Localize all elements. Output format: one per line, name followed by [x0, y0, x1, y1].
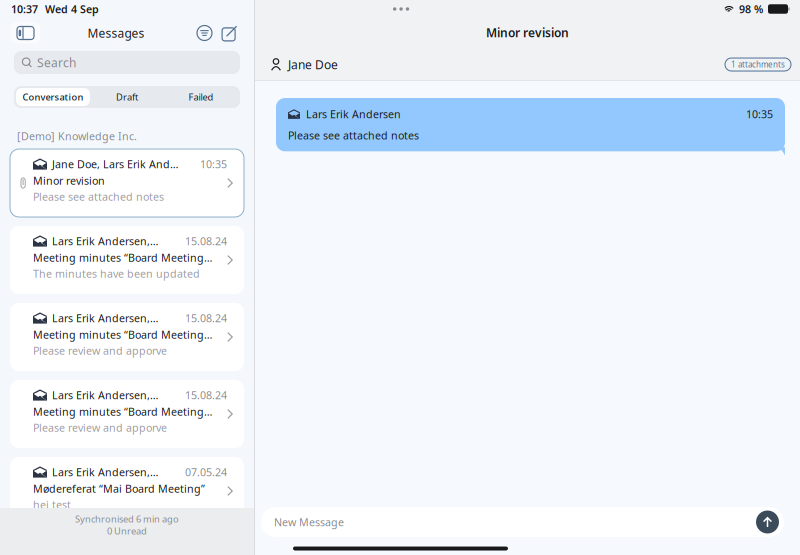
- button[interactable]: Search: [14, 51, 240, 74]
- staticText: Wed 4 Sep: [45, 2, 99, 16]
- staticText: Synchronised 6 min ago: [75, 513, 179, 525]
- staticText: 0 Unread: [107, 525, 147, 537]
- staticText: Mødereferat “Mai Board Meeting”: [33, 481, 205, 496]
- button[interactable]: Jane Doe, Lars Erik And…: [10, 149, 244, 217]
- button[interactable]: Failed: [164, 88, 238, 106]
- staticText: hei test: [33, 497, 71, 512]
- staticText: 10:35: [746, 107, 773, 121]
- staticText: [Demo] Knowledge Inc.: [17, 129, 137, 143]
- button[interactable]: Lars Erik Andersen,…: [10, 457, 244, 525]
- staticText: Please see attached notes: [33, 189, 164, 204]
- button[interactable]: 1 attachments: [725, 57, 791, 70]
- staticText: Lars Erik Andersen,…: [52, 234, 158, 248]
- button[interactable]: New Message: [261, 507, 784, 537]
- staticText: Meeting minutes “Board Meeting…: [33, 327, 212, 342]
- staticText: Failed: [188, 91, 213, 103]
- button[interactable]: Draft: [90, 88, 164, 106]
- staticText: Lars Erik Andersen: [306, 107, 401, 121]
- staticText: Jane Doe, Lars Erik And…: [52, 157, 178, 171]
- staticText: Please review and apporve: [33, 420, 167, 435]
- staticText: Minor revision: [486, 24, 569, 40]
- staticText: Draft: [116, 91, 138, 103]
- staticText: 15.08.24: [185, 388, 227, 402]
- staticText: 98 %: [739, 2, 763, 16]
- staticText: Lars Erik Andersen,…: [52, 311, 158, 325]
- staticText: Please see attached notes: [288, 128, 419, 142]
- staticText: New Message: [274, 515, 344, 529]
- staticText: Messages: [87, 25, 144, 41]
- staticText: Conversation: [22, 91, 83, 103]
- staticText: The minutes have been updated: [33, 266, 200, 281]
- staticText: Meeting minutes “Board Meeting…: [33, 250, 212, 265]
- staticText: 10:37: [11, 2, 38, 16]
- staticText: 15.08.24: [185, 234, 227, 248]
- staticText: Lars Erik Andersen,…: [52, 388, 158, 402]
- staticText: Minor revision: [33, 173, 105, 188]
- button[interactable]: Lars Erik Andersen,…: [10, 226, 244, 294]
- button[interactable]: Conversation: [16, 88, 90, 106]
- staticText: 15.08.24: [185, 311, 227, 325]
- button[interactable]: Filter: [192, 20, 217, 45]
- staticText: Jane Doe: [288, 56, 338, 72]
- button[interactable]: Send: [756, 510, 784, 533]
- staticText: Please review and apporve: [33, 343, 167, 358]
- button[interactable]: Toggle Sidebar: [11, 22, 40, 43]
- staticText: Search: [37, 54, 76, 70]
- button[interactable]: Lars Erik Andersen,…: [10, 303, 244, 371]
- staticText: 10:35: [200, 157, 227, 171]
- staticText: Meeting minutes “Board Meeting…: [33, 404, 212, 419]
- staticText: Lars Erik Andersen,…: [52, 465, 158, 479]
- button[interactable]: Compose: [217, 21, 240, 45]
- staticText: 07.05.24: [185, 465, 227, 479]
- staticText: 1 attachments: [731, 59, 785, 70]
- button[interactable]: Lars Erik Andersen,…: [10, 380, 244, 448]
